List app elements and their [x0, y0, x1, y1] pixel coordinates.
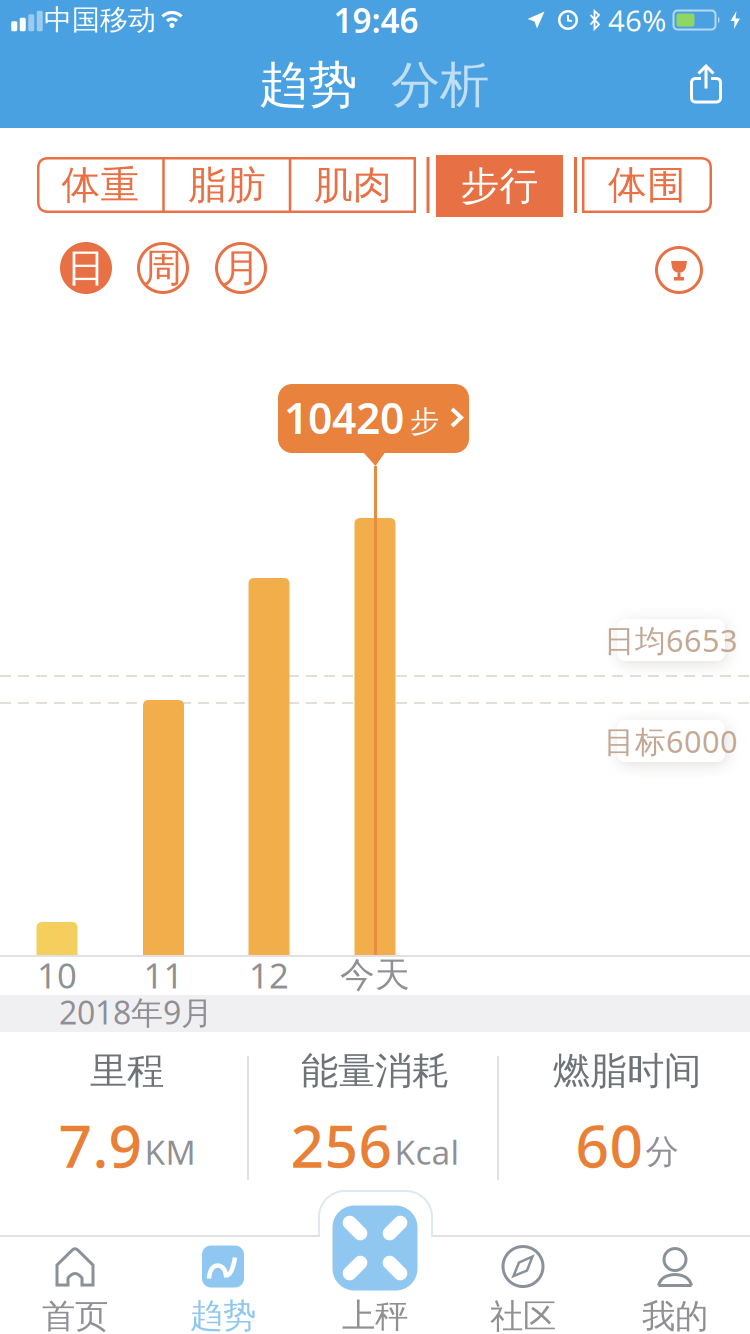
staticText: 12: [249, 952, 289, 998]
staticText: 我的: [642, 1296, 708, 1334]
staticText: 上秤: [342, 1295, 408, 1334]
staticText: 10420: [284, 389, 404, 446]
staticText: 周: [143, 244, 182, 292]
staticText: 10: [37, 952, 77, 998]
button[interactable]: 日: [60, 242, 112, 294]
staticText: 分: [645, 1131, 678, 1172]
button[interactable]: 我的: [642, 1247, 708, 1334]
staticText: 社区: [490, 1296, 556, 1334]
button[interactable]: 体重: [37, 157, 163, 213]
staticText: 脂肪: [188, 161, 266, 209]
staticText: 256: [290, 1106, 392, 1184]
staticText: Kcal: [394, 1130, 459, 1174]
staticText: KM: [144, 1130, 195, 1174]
staticText: 中国移动: [44, 3, 156, 37]
button[interactable]: Ranking: [655, 246, 703, 294]
staticText: 日: [66, 244, 105, 292]
button[interactable]: 首页: [42, 1247, 108, 1334]
staticText: 分析: [391, 55, 489, 115]
button[interactable]: 分析: [391, 55, 489, 115]
staticText: 体重: [61, 161, 139, 209]
staticText: 19:46: [333, 0, 418, 42]
button[interactable]: 肌肉: [290, 157, 416, 213]
button[interactable]: 社区: [490, 1245, 556, 1334]
staticText: 里程: [90, 1048, 164, 1094]
button[interactable]: 周: [137, 242, 189, 294]
staticText: 月: [221, 244, 260, 292]
staticText: 今天: [340, 954, 410, 996]
button[interactable]: 脂肪: [164, 157, 290, 213]
staticText: 11: [143, 952, 183, 998]
button[interactable]: 月: [215, 242, 267, 294]
button[interactable]: 趋势: [190, 1245, 256, 1334]
button[interactable]: 10420: [278, 384, 469, 468]
staticText: 目标6000: [604, 721, 738, 761]
staticText: 体围: [608, 161, 686, 209]
button[interactable]: 趋势: [259, 55, 357, 115]
staticText: 日均6653: [604, 620, 738, 660]
staticText: 趋势: [190, 1295, 256, 1334]
button[interactable]: Share: [690, 64, 722, 103]
button[interactable]: 体围: [582, 157, 712, 213]
staticText: 步行: [460, 162, 538, 210]
staticText: 7.9: [58, 1106, 142, 1184]
staticText: 2018年9月: [59, 991, 213, 1033]
staticText: 46%: [608, 0, 666, 39]
staticText: 趋势: [259, 55, 357, 115]
staticText: 肌肉: [314, 161, 392, 209]
staticText: 步: [410, 403, 439, 439]
staticText: 60: [575, 1106, 643, 1184]
button[interactable]: 上秤: [332, 1205, 417, 1334]
button[interactable]: 步行: [436, 155, 563, 217]
staticText: 燃脂时间: [553, 1048, 701, 1094]
staticText: 首页: [42, 1296, 108, 1334]
staticText: 能量消耗: [301, 1048, 449, 1094]
